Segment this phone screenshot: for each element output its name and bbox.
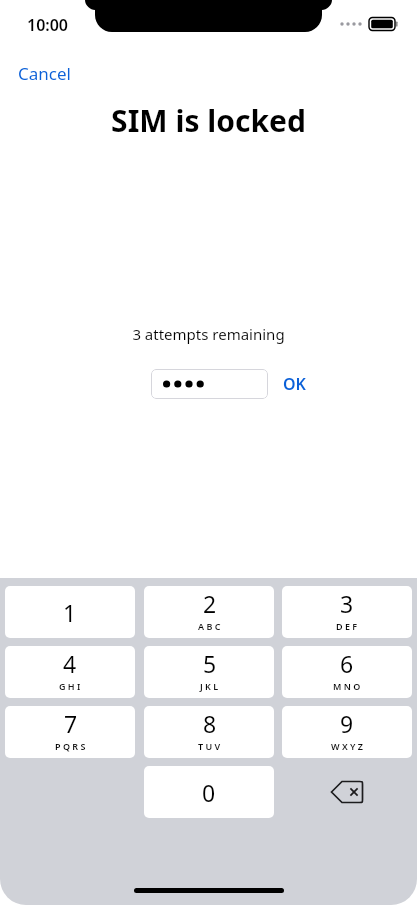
button[interactable]: 3 <box>282 586 412 638</box>
staticText: 7 <box>64 708 78 739</box>
staticText: J K L <box>200 680 219 692</box>
staticText: OK <box>283 373 306 395</box>
staticText: 1 <box>63 597 77 628</box>
staticText: 6 <box>340 648 354 679</box>
staticText: D E F <box>336 620 358 632</box>
button[interactable]: 8 <box>144 706 274 758</box>
staticText: Cancel <box>18 62 71 85</box>
button[interactable]: 6 <box>282 646 412 698</box>
button[interactable]: 1 <box>5 586 135 638</box>
button[interactable] <box>151 369 268 399</box>
staticText: T U V <box>198 740 221 752</box>
staticText: 3 <box>340 588 354 619</box>
staticText: 10:00 <box>27 14 69 36</box>
staticText: A B C <box>198 620 221 632</box>
staticText: G H I <box>59 680 81 692</box>
staticText: 0 <box>202 777 216 808</box>
button[interactable]: Cancel <box>10 58 79 89</box>
button[interactable]: 5 <box>144 646 274 698</box>
button[interactable]: 0 <box>144 766 274 818</box>
staticText: P Q R S <box>55 740 86 752</box>
staticText: 4 <box>63 648 77 679</box>
staticText: 9 <box>340 708 354 739</box>
staticText: 8 <box>203 708 217 739</box>
button[interactable]: Backspace <box>282 766 412 818</box>
button[interactable]: 7 <box>5 706 135 758</box>
staticText: SIM is locked <box>111 100 306 141</box>
staticText: W X Y Z <box>331 740 363 752</box>
staticText: M N O <box>333 680 361 692</box>
button[interactable]: 4 <box>5 646 135 698</box>
button[interactable]: 9 <box>282 706 412 758</box>
staticText: 2 <box>203 588 217 619</box>
button[interactable]: 2 <box>144 586 274 638</box>
staticText: 3 attempts remaining <box>132 324 285 344</box>
staticText: 5 <box>203 648 217 679</box>
button[interactable]: OK <box>277 369 312 399</box>
